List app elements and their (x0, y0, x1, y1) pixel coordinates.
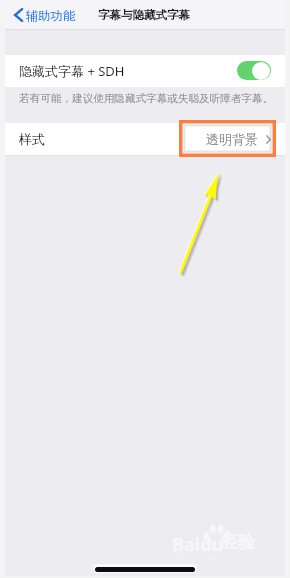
staticText: 经验 (221, 532, 255, 553)
staticText: 样式 (19, 131, 45, 147)
staticText: 字幕与隐藏式字幕 (98, 8, 190, 22)
button[interactable]: 辅助功能 (5, 0, 84, 30)
staticText: Baidu (172, 532, 224, 557)
button[interactable]: Closed captions and SDH toggle, on (237, 61, 271, 80)
staticText: 隐藏式字幕 + SDH (19, 62, 125, 80)
staticText: 若有可能，建议使用隐藏式字幕或失聪及听障者字幕。 (19, 92, 274, 105)
button[interactable]: 隐藏式字幕 + SDH (5, 55, 285, 87)
button[interactable]: 样式 (5, 123, 285, 155)
staticText: 透明背景 (206, 131, 258, 147)
staticText: 辅助功能 (26, 8, 76, 23)
